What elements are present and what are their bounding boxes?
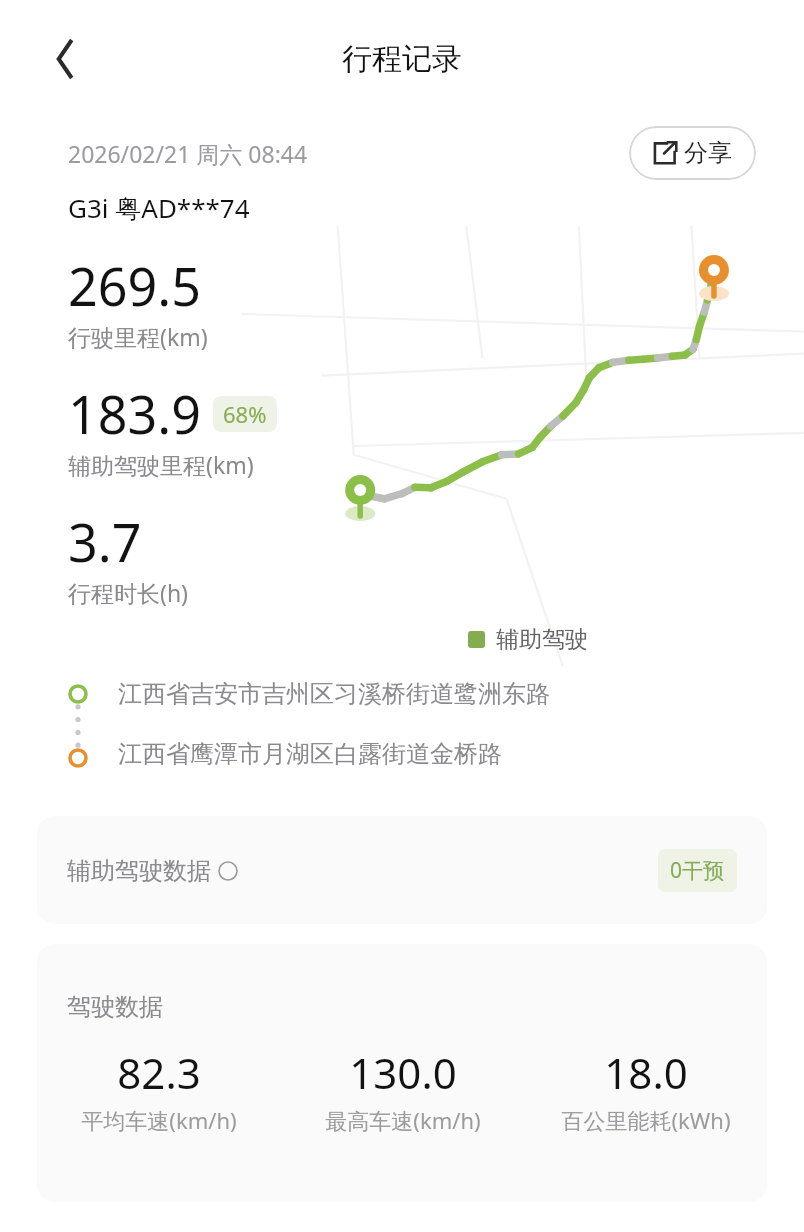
staticText: 2026/02/21 周六 08:44 [68, 138, 308, 169]
staticText: 平均车速(km/h) [81, 1105, 237, 1135]
staticText: 82.3 [117, 1044, 201, 1101]
staticText: 行程记录 [342, 40, 462, 78]
staticText: 0干预 [670, 856, 725, 885]
button[interactable]: 分享 [629, 126, 756, 180]
button[interactable]: 辅助驾驶数据 [37, 816, 767, 924]
staticText: 辅助驾驶里程(km) [68, 449, 254, 480]
staticText: 行程时长(h) [68, 577, 189, 608]
staticText: 江西省鹰潭市月湖区白露街道金桥路 [118, 739, 502, 769]
staticText: 驾驶数据 [67, 992, 163, 1022]
button[interactable]: 驾驶数据 [37, 944, 767, 1202]
staticText: 最高车速(km/h) [325, 1105, 481, 1135]
staticText: 行驶里程(km) [68, 321, 208, 352]
staticText: 辅助驾驶 [496, 625, 588, 654]
staticText: 3.7 [68, 506, 142, 577]
staticText: 分享 [684, 138, 732, 168]
staticText: 辅助驾驶数据 [67, 856, 211, 886]
staticText: 68% [223, 399, 267, 429]
staticText: 18.0 [604, 1044, 688, 1101]
staticText: G3i 粤AD***74 [68, 190, 250, 226]
staticText: 130.0 [349, 1044, 457, 1101]
staticText: 江西省吉安市吉州区习溪桥街道鹭洲东路 [118, 679, 550, 709]
staticText: 百公里能耗(kWh) [561, 1105, 731, 1135]
staticText: 269.5 [68, 250, 201, 321]
staticText: 183.9 [68, 378, 201, 449]
button[interactable]: Back [30, 27, 94, 91]
